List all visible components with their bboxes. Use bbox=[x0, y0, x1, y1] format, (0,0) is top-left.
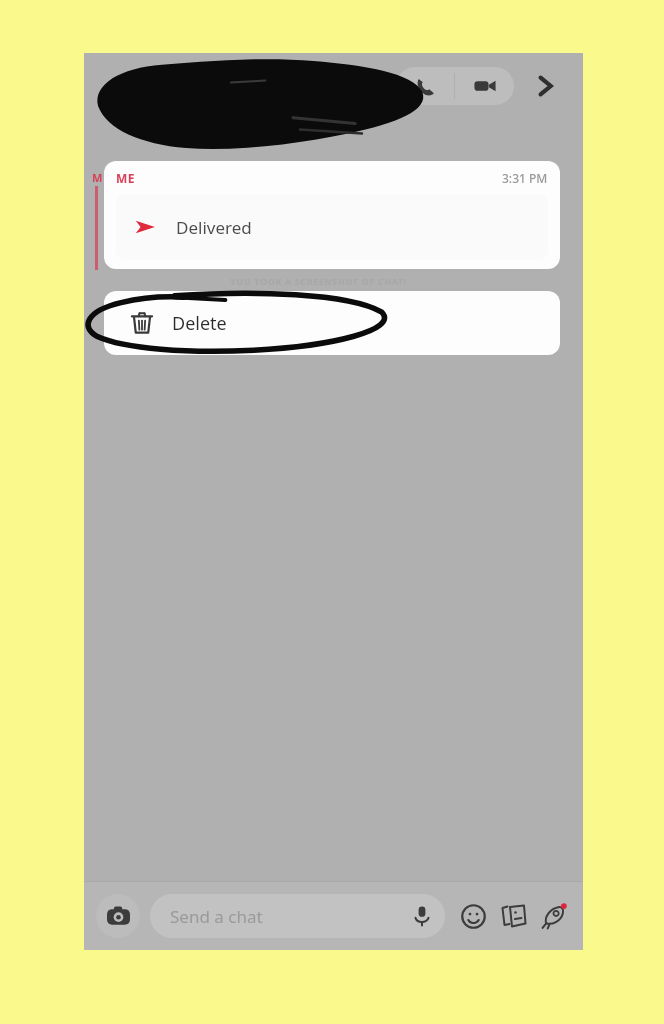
staticText: Delete bbox=[172, 311, 227, 336]
button[interactable]: ME bbox=[104, 161, 560, 269]
staticText: M bbox=[92, 170, 103, 185]
button[interactable]: Send a chat bbox=[150, 894, 445, 938]
button[interactable]: Delivered bbox=[116, 194, 548, 260]
button[interactable]: Camera bbox=[96, 894, 140, 938]
button[interactable]: Voice message bbox=[403, 897, 441, 935]
button[interactable]: Open profile bbox=[524, 65, 566, 107]
button[interactable]: Emoji bbox=[453, 896, 493, 936]
staticText: Delivered bbox=[176, 216, 252, 239]
button[interactable]: Delete bbox=[104, 291, 560, 355]
staticText: ME bbox=[116, 170, 135, 186]
button[interactable]: Call bbox=[396, 67, 454, 105]
staticText: Send a chat bbox=[170, 905, 263, 928]
button[interactable]: Video call bbox=[455, 67, 514, 105]
button[interactable]: Stickers bbox=[493, 896, 533, 936]
staticText: 3:31 PM bbox=[502, 170, 548, 186]
button[interactable]: Games bbox=[533, 895, 575, 937]
